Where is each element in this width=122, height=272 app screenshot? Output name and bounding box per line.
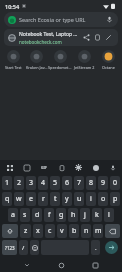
button[interactable]: Notebook Test, Laptop T… [4,29,118,46]
staticText: 9 [101,178,106,188]
button[interactable]: 9 [98,176,108,190]
button[interactable]: Clipboard [56,162,67,173]
button[interactable]: 3 [26,176,36,190]
button[interactable]: u [74,192,84,206]
button[interactable]: v [57,224,67,238]
button[interactable]: g [56,208,66,222]
button[interactable]: w [14,192,24,206]
staticText: u [77,194,82,204]
button[interactable]: Voice search [105,15,114,24]
button[interactable]: ?123 [2,240,17,255]
button[interactable]: Speedomet… [48,49,72,71]
button[interactable]: j [80,208,90,222]
staticText: y [65,194,69,204]
button[interactable]: Search Ecosia or type URL [4,12,118,27]
button[interactable]: q [2,192,12,206]
staticText: s [23,210,27,220]
button[interactable]: b [69,224,79,238]
button[interactable]: Recents [88,258,102,272]
button[interactable]: t [50,192,60,206]
button[interactable]: 4 [38,176,48,190]
button[interactable]: k [92,208,102,222]
button[interactable]: Kraken Jav… [25,49,48,71]
button[interactable]: Octane [96,49,120,71]
button[interactable]: Go [105,241,118,254]
staticText: j [84,210,86,220]
staticText: 2 [17,178,22,188]
staticText: ?123 [5,245,15,251]
staticText: r [42,194,45,204]
staticText: l [108,210,110,220]
staticText: n [84,226,89,236]
button[interactable]: 2 [14,176,24,190]
button[interactable]: i [86,192,96,206]
staticText: . [95,244,97,252]
staticText: e [29,194,33,204]
button[interactable]: Copy link [92,32,103,43]
button[interactable]: 0 [110,176,120,190]
staticText: h [71,210,76,220]
staticText: 4 [41,178,46,188]
staticText: Start Test [5,65,22,70]
staticText: k [95,210,99,220]
staticText: Notebook Test, Laptop T… [19,31,79,38]
button[interactable]: a [8,208,18,222]
staticText: 3 [29,178,34,188]
button[interactable]: e [26,192,36,206]
staticText: Search Ecosia or type URL [19,16,86,23]
button[interactable]: o [98,192,108,206]
button[interactable]: Apps [4,162,15,173]
button[interactable]: l [104,208,114,222]
button[interactable]: GIF [38,162,49,173]
button[interactable]: Settings [73,162,84,173]
button[interactable]: Edit [103,32,114,43]
staticText: x [36,226,40,236]
button[interactable]: 6 [62,176,72,190]
button[interactable]: p [110,192,120,206]
button[interactable]: Stickers [21,162,32,173]
button[interactable]: z [20,224,31,238]
button[interactable]: h [68,208,78,222]
button[interactable]: 7 [74,176,84,190]
staticText: 0 [113,178,118,188]
button[interactable]: Themes [90,162,101,173]
button[interactable]: JetStream 2 [72,49,96,71]
button[interactable]: Shift [2,224,18,238]
staticText: GIF [41,165,47,170]
staticText: / [22,244,25,252]
staticText: Octane [102,65,115,70]
button[interactable]: s [20,208,30,222]
button[interactable]: d [32,208,42,222]
button[interactable]: 5 [50,176,60,190]
button[interactable]: Voice input [107,162,118,173]
button[interactable]: Home [54,258,68,272]
staticText: i [90,194,92,204]
button[interactable]: r [38,192,48,206]
staticText: 1 [5,178,10,188]
button[interactable]: Back [20,258,34,272]
staticText: q [5,194,10,204]
staticText: notebookcheck.com [19,39,62,45]
button[interactable]: Backspace [105,224,120,238]
staticText: Speedomet… [48,65,72,70]
button[interactable]: 8 [86,176,96,190]
button[interactable]: x [33,224,43,238]
button[interactable]: Emoji [30,240,39,255]
button[interactable]: m [93,224,103,238]
button[interactable]: / [19,240,28,255]
button[interactable]: n [81,224,91,238]
staticText: Kraken Jav… [26,65,48,70]
button[interactable]: Start Test [2,49,25,71]
button[interactable]: . [91,240,100,255]
button[interactable]: f [44,208,54,222]
button[interactable]: Share [81,32,92,43]
staticText: 8 [89,178,94,188]
button[interactable]: y [62,192,72,206]
staticText: v [60,226,64,236]
staticText: t [54,194,57,204]
staticText: d [35,210,40,220]
staticText: f [48,210,51,220]
button[interactable]: 1 [2,176,12,190]
button[interactable]: c [45,224,55,238]
